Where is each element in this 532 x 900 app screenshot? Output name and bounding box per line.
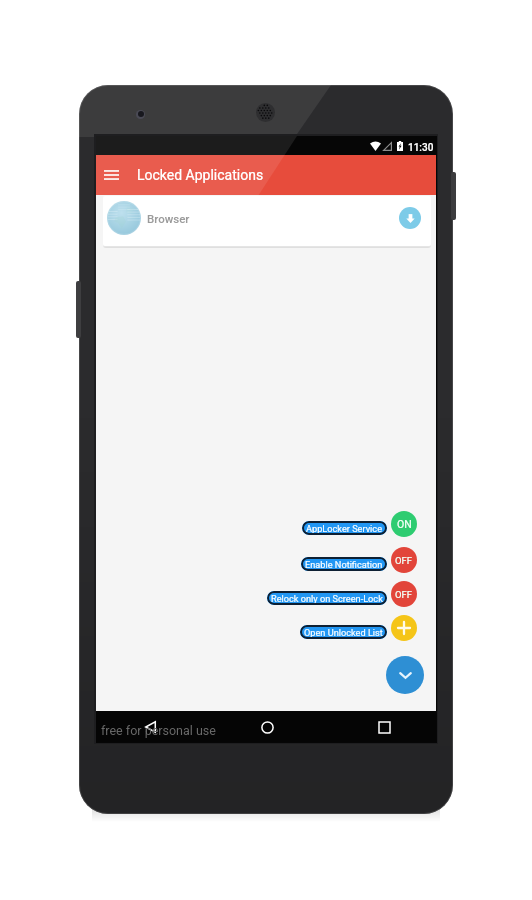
staticText: AppLocker Service [306,523,383,534]
staticText: Locked Applications [137,167,264,183]
staticText: Relock only on Screen-Lock [271,593,383,604]
button[interactable]: Relock only on Screen-Lock [267,591,387,605]
button[interactable]: Enable Notification [391,547,417,573]
button[interactable]: Open Unlocked List [391,615,417,641]
button[interactable]: Relock only on Screen-Lock [391,581,417,607]
button[interactable]: Collapse actions menu [386,656,424,694]
button[interactable]: Home [254,714,280,740]
staticText: OFF [395,555,413,566]
staticText: OFF [395,589,413,600]
button[interactable]: AppLocker Service [391,511,417,537]
button[interactable]: Back [137,714,163,740]
button[interactable]: AppLocker Service [302,521,387,535]
button[interactable]: Open navigation drawer [98,155,124,195]
staticText: free for personal use [101,723,216,738]
button[interactable]: Unlock application [399,207,421,229]
button[interactable]: Enable Notification [301,557,387,571]
staticText: ON [397,518,412,530]
staticText: Open Unlocked List [304,627,383,638]
button[interactable]: Open Unlocked List [300,625,387,639]
button[interactable]: Recent apps [371,714,397,740]
staticText: Browser [147,212,190,225]
button[interactable]: Browser [103,196,431,246]
staticText: 11:30 [408,142,434,154]
staticText: Enable Notification [305,559,383,570]
